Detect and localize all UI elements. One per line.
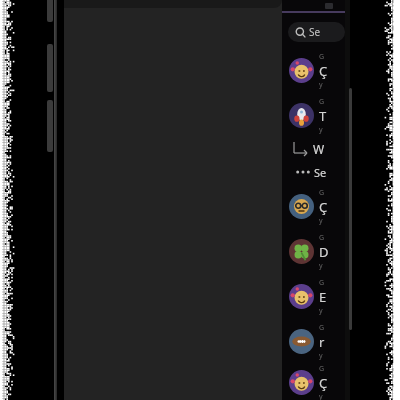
staticText: D bbox=[319, 243, 329, 261]
button[interactable]: Reply bbox=[282, 138, 345, 160]
button[interactable]: Group avatar bbox=[282, 93, 345, 138]
staticText: Ç bbox=[319, 62, 328, 80]
button[interactable]: Group avatar bbox=[282, 364, 345, 400]
button[interactable]: Group avatar bbox=[289, 58, 314, 83]
other: Reply bbox=[293, 141, 309, 157]
other: More bbox=[296, 169, 310, 175]
staticText: G bbox=[319, 323, 325, 333]
staticText: G bbox=[319, 233, 325, 243]
staticText: E bbox=[319, 288, 327, 306]
button[interactable]: Group avatar bbox=[289, 103, 314, 128]
button[interactable]: Group avatar bbox=[282, 48, 345, 93]
button[interactable]: Group avatar bbox=[282, 274, 345, 319]
button[interactable]: Group avatar bbox=[282, 229, 345, 274]
button[interactable]: Group avatar bbox=[282, 184, 345, 229]
staticText: Ç bbox=[319, 198, 328, 216]
staticText: G bbox=[319, 188, 325, 198]
staticText: y bbox=[319, 351, 323, 361]
staticText: Se bbox=[314, 165, 327, 180]
button[interactable]: Group avatar bbox=[282, 319, 345, 364]
button[interactable]: More bbox=[282, 160, 345, 184]
staticText: G bbox=[319, 278, 325, 288]
staticText: G bbox=[319, 52, 325, 62]
button[interactable]: Group avatar bbox=[289, 194, 314, 219]
button[interactable]: Se bbox=[288, 22, 345, 42]
staticText: y bbox=[319, 125, 323, 135]
button[interactable]: Group avatar bbox=[289, 370, 314, 395]
staticText: W bbox=[313, 141, 325, 157]
staticText: G bbox=[319, 97, 325, 107]
button[interactable]: Group avatar bbox=[289, 284, 314, 309]
staticText: G bbox=[319, 364, 325, 374]
staticText: y bbox=[319, 261, 323, 271]
staticText: y bbox=[319, 80, 323, 90]
staticText: Se bbox=[309, 25, 321, 39]
button[interactable]: Group avatar bbox=[289, 329, 314, 354]
staticText: y bbox=[319, 216, 323, 226]
staticText: T bbox=[319, 107, 327, 125]
button[interactable]: Group avatar bbox=[289, 239, 314, 264]
staticText: r bbox=[319, 333, 325, 351]
staticText: Ç bbox=[319, 374, 328, 392]
staticText: y bbox=[319, 306, 323, 316]
staticText: y bbox=[319, 392, 323, 400]
